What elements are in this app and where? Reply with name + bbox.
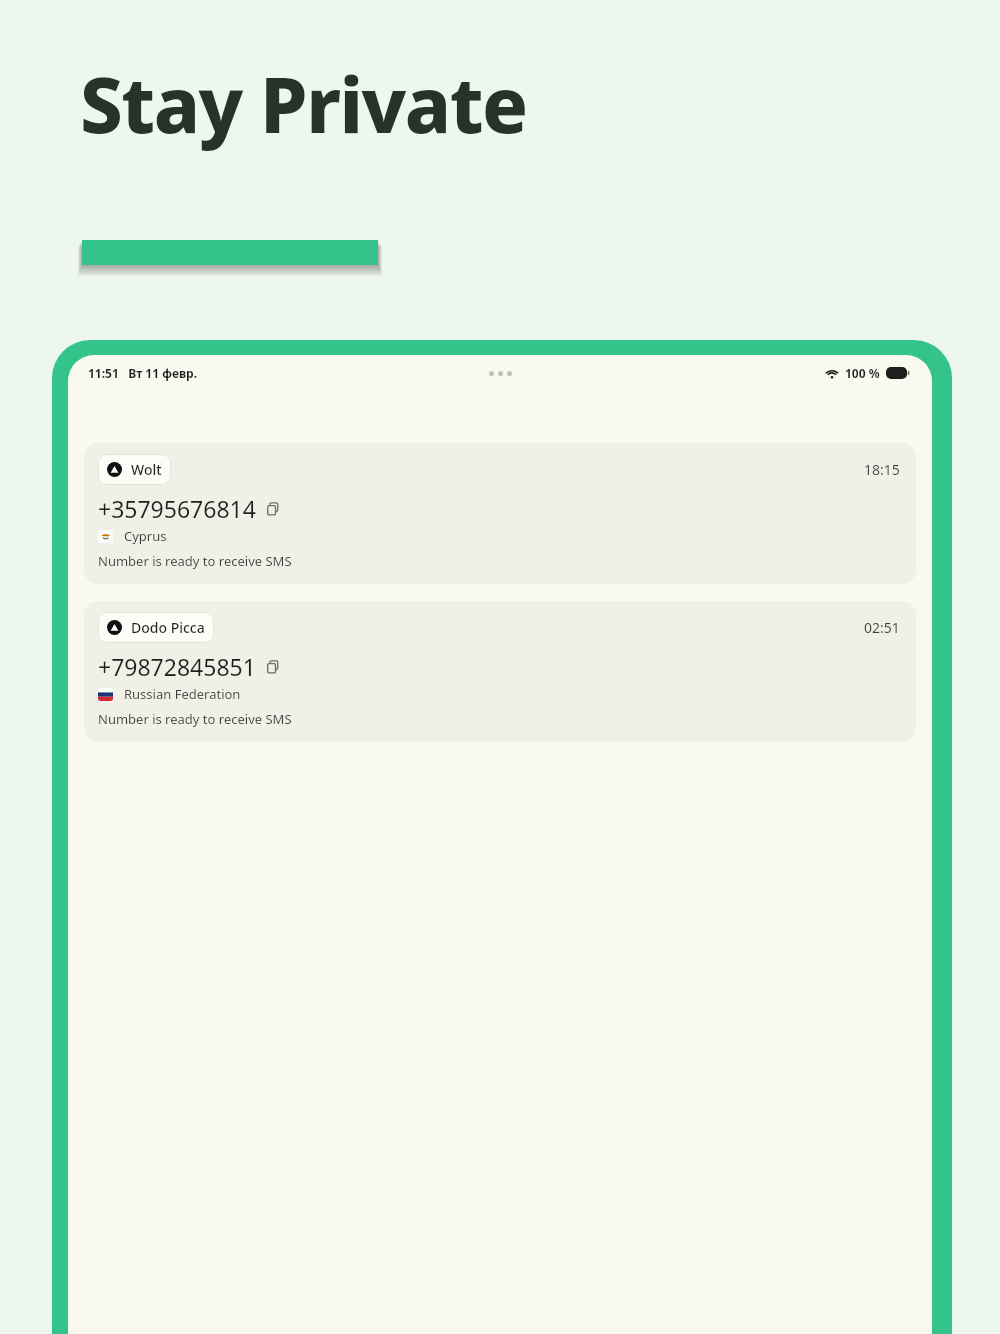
button[interactable]: Wolt xyxy=(98,454,171,485)
staticText: 02:51 xyxy=(864,618,900,637)
button[interactable]: 02:51 xyxy=(84,601,916,742)
staticText: Cyprus xyxy=(124,527,167,545)
staticText: 100 % xyxy=(845,365,880,381)
staticText: Number is ready to receive SMS xyxy=(98,710,292,728)
staticText: Number is ready to receive SMS xyxy=(98,552,292,570)
staticText: Stay Private xyxy=(80,52,527,156)
staticText: 11:51 Вт 11 февр. xyxy=(88,365,198,381)
button[interactable]: Copy number xyxy=(263,499,283,519)
staticText: +35795676814 xyxy=(98,493,256,524)
staticText: Dodo Picca xyxy=(131,618,205,637)
staticText: +79872845851 xyxy=(98,651,256,682)
staticText: Wolt xyxy=(131,460,162,479)
button[interactable]: 18:15 xyxy=(84,443,916,584)
staticText: Russian Federation xyxy=(124,685,241,703)
button[interactable]: Dodo Picca xyxy=(98,612,214,643)
button[interactable]: Copy number xyxy=(263,657,283,677)
staticText: 18:15 xyxy=(864,460,900,479)
